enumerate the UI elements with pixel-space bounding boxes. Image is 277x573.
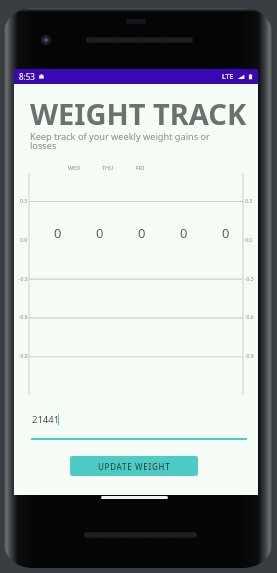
staticText: 8:53 (19, 71, 35, 82)
staticText: FRI (136, 164, 145, 171)
staticText: 0.0 (245, 237, 253, 244)
staticText: WEIGHT TRACK (30, 94, 247, 133)
staticText: 0 (54, 224, 62, 242)
staticText: THU (102, 164, 114, 171)
staticText: -0.6 (245, 314, 254, 321)
staticText: UPDATE WEIGHT (98, 461, 171, 472)
button[interactable]: 21441 (31, 408, 247, 430)
staticText: 0 (180, 224, 188, 242)
staticText: 0 (138, 224, 146, 242)
staticText: 0.3 (20, 198, 28, 205)
staticText: 0 (96, 224, 104, 242)
staticText: -0.6 (19, 314, 28, 321)
staticText: -0.3 (245, 276, 254, 283)
staticText: -0.9 (245, 353, 254, 360)
staticText: Keep track of your weekly weight gains o… (30, 130, 214, 151)
staticText: -0.9 (19, 353, 28, 360)
staticText: 0 (222, 224, 230, 242)
staticText: -0.3 (19, 276, 28, 283)
button[interactable]: UPDATE WEIGHT (70, 456, 198, 476)
staticText: 0.3 (245, 198, 253, 205)
staticText: WED (68, 164, 81, 171)
staticText: 21441 (32, 413, 60, 426)
staticText: LTE (222, 72, 234, 82)
staticText: 0.0 (20, 237, 28, 244)
